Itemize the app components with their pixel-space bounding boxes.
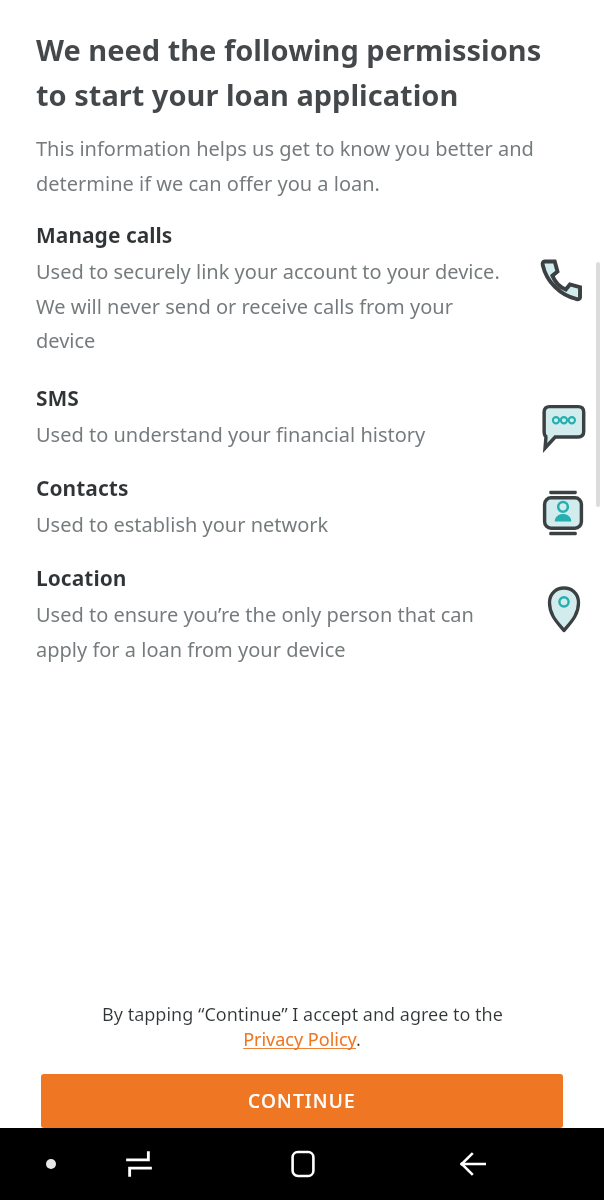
staticText: Used to understand your financial histor… (36, 421, 426, 448)
staticText: SMS (36, 384, 79, 413)
button[interactable]: Back (442, 1133, 504, 1195)
other: Contacts (540, 490, 586, 536)
staticText: Used to ensure you’re the only person th… (36, 601, 516, 663)
other: Manage calls (540, 255, 586, 301)
button[interactable]: Home (272, 1133, 334, 1195)
other: SMS (540, 402, 586, 448)
button[interactable]: CONTINUE (41, 1074, 563, 1128)
staticText: This information helps us get to know yo… (36, 135, 580, 197)
button[interactable]: SMS (0, 384, 604, 448)
staticText: Used to establish your network (36, 511, 329, 538)
staticText: Manage calls (36, 221, 173, 250)
staticText: Used to securely link your account to yo… (36, 258, 516, 354)
staticText: We need the following permissions to sta… (36, 30, 570, 115)
button[interactable]: Notification (20, 1133, 82, 1195)
staticText: Contacts (36, 474, 129, 503)
other: Location (542, 586, 586, 630)
staticText: Privacy Policy. (243, 1027, 361, 1052)
staticText: By tapping “Continue” I accept and agree… (102, 1002, 503, 1027)
button[interactable]: Privacy Policy. (243, 1027, 361, 1052)
button[interactable]: Recent apps (108, 1133, 170, 1195)
button[interactable]: Location (0, 564, 604, 663)
button[interactable]: Manage calls (0, 221, 604, 354)
staticText: Location (36, 564, 127, 593)
staticText: CONTINUE (248, 1088, 356, 1114)
button[interactable]: Contacts (0, 474, 604, 538)
